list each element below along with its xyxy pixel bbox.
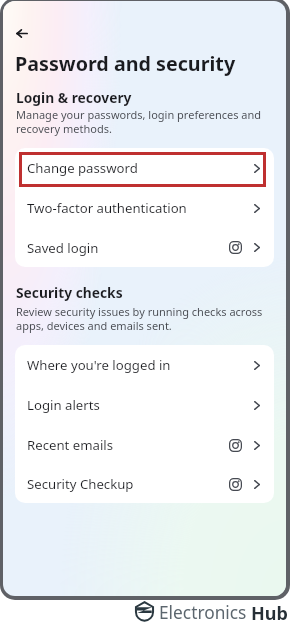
staticText: Login alerts xyxy=(27,396,100,414)
staticText: Where you're logged in xyxy=(27,356,171,374)
staticText: Saved login xyxy=(27,239,99,257)
staticText: Security checks xyxy=(16,283,123,302)
staticText: Security Checkup xyxy=(27,475,134,493)
staticText: Recent emails xyxy=(27,436,114,454)
button[interactable]: Back xyxy=(9,20,35,46)
button[interactable]: Security Checkup xyxy=(15,465,274,503)
button[interactable]: Login alerts xyxy=(15,385,274,425)
staticText: Login & recovery xyxy=(16,88,132,107)
staticText: Two-factor authentication xyxy=(27,199,187,217)
button[interactable]: Recent emails xyxy=(15,425,274,465)
staticText: Hub xyxy=(251,601,288,625)
button[interactable]: Two-factor authentication xyxy=(15,188,274,228)
staticText: Change password xyxy=(27,159,138,177)
button[interactable]: Saved login xyxy=(15,228,274,267)
staticText: Review security issues by running checks… xyxy=(16,304,263,333)
button[interactable]: Change password xyxy=(15,148,274,188)
staticText: Password and security xyxy=(15,50,236,77)
button[interactable]: Where you're logged in xyxy=(15,345,274,385)
staticText: Electronics xyxy=(159,601,247,625)
staticText: Manage your passwords, login preferences… xyxy=(16,107,262,136)
